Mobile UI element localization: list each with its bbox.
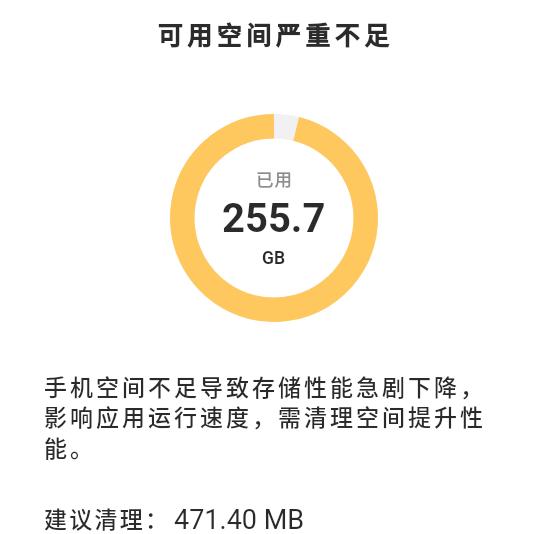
button[interactable]: 已用 255.7 GB 存储空间 (170, 114, 378, 322)
staticText: 471.40 MB (174, 504, 305, 534)
staticText: 255.7 (222, 195, 326, 242)
staticText: 可用空间严重不足 (157, 16, 394, 52)
staticText: GB (262, 248, 286, 269)
staticText: 建议清理： (43, 501, 169, 534)
button[interactable]: 建议清理： (43, 501, 305, 534)
staticText: 手机空间不足导致存储性能急剧下降，影响应用运行速度，需清理空间提升性能。 (44, 369, 489, 464)
staticText: 已用 (256, 166, 293, 191)
